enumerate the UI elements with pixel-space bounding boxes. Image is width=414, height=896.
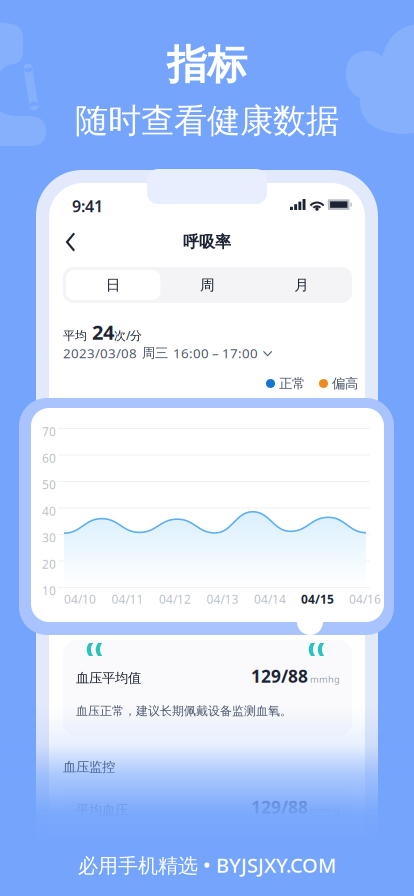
staticText: 呼吸率 (183, 232, 231, 252)
staticText: 04/16 (349, 591, 381, 607)
staticText: 129/88 (251, 664, 308, 687)
staticText: 04/10 (64, 591, 96, 607)
staticText: 月 (294, 276, 309, 294)
button[interactable]: 日 (66, 270, 160, 300)
staticText: 血压监控 (63, 759, 115, 775)
staticText: 9:41 (72, 195, 103, 217)
staticText: 50 (42, 476, 56, 492)
staticText: 偏高 (328, 375, 358, 392)
staticText: 60 (42, 450, 56, 466)
staticText: 血压正常，建议长期佩戴设备监测血氧。 (76, 704, 292, 718)
staticText: 04/13 (206, 591, 238, 607)
staticText: 10 (42, 582, 56, 598)
staticText: 必用手机精选 • BYJSJXY.COM (78, 852, 336, 878)
staticText: 04/15 (301, 591, 334, 607)
staticText: 20 (42, 556, 56, 572)
staticText: 日 (106, 276, 121, 294)
staticText: 平均血压 (76, 802, 128, 818)
button[interactable]: 月 (255, 270, 349, 300)
staticText: 平均 (63, 328, 87, 343)
staticText: 04/12 (159, 591, 191, 607)
staticText: 正常 (275, 375, 305, 392)
staticText: 16:00 – 17:00 (173, 344, 258, 362)
staticText: mmhg (310, 673, 340, 685)
button[interactable]: 周 (160, 270, 255, 300)
staticText: 次/分 (114, 327, 142, 343)
button[interactable]: 返回 (58, 228, 88, 256)
staticText: 24 (87, 319, 114, 345)
staticText: 70 (42, 423, 56, 439)
staticText: 随时查看健康数据 (75, 100, 339, 141)
staticText: 周 (200, 276, 215, 294)
staticText: 04/11 (111, 591, 143, 607)
staticText: 血压平均值 (76, 670, 141, 686)
staticText: 129/88 (251, 795, 308, 818)
staticText: 周三 (142, 345, 168, 361)
staticText: 指标 (167, 40, 247, 89)
staticText: 04/14 (254, 591, 286, 607)
staticText: 2023/03/08 (63, 344, 137, 362)
staticText: 40 (42, 503, 56, 519)
staticText: mmhg (310, 804, 340, 816)
staticText: 30 (42, 529, 56, 545)
